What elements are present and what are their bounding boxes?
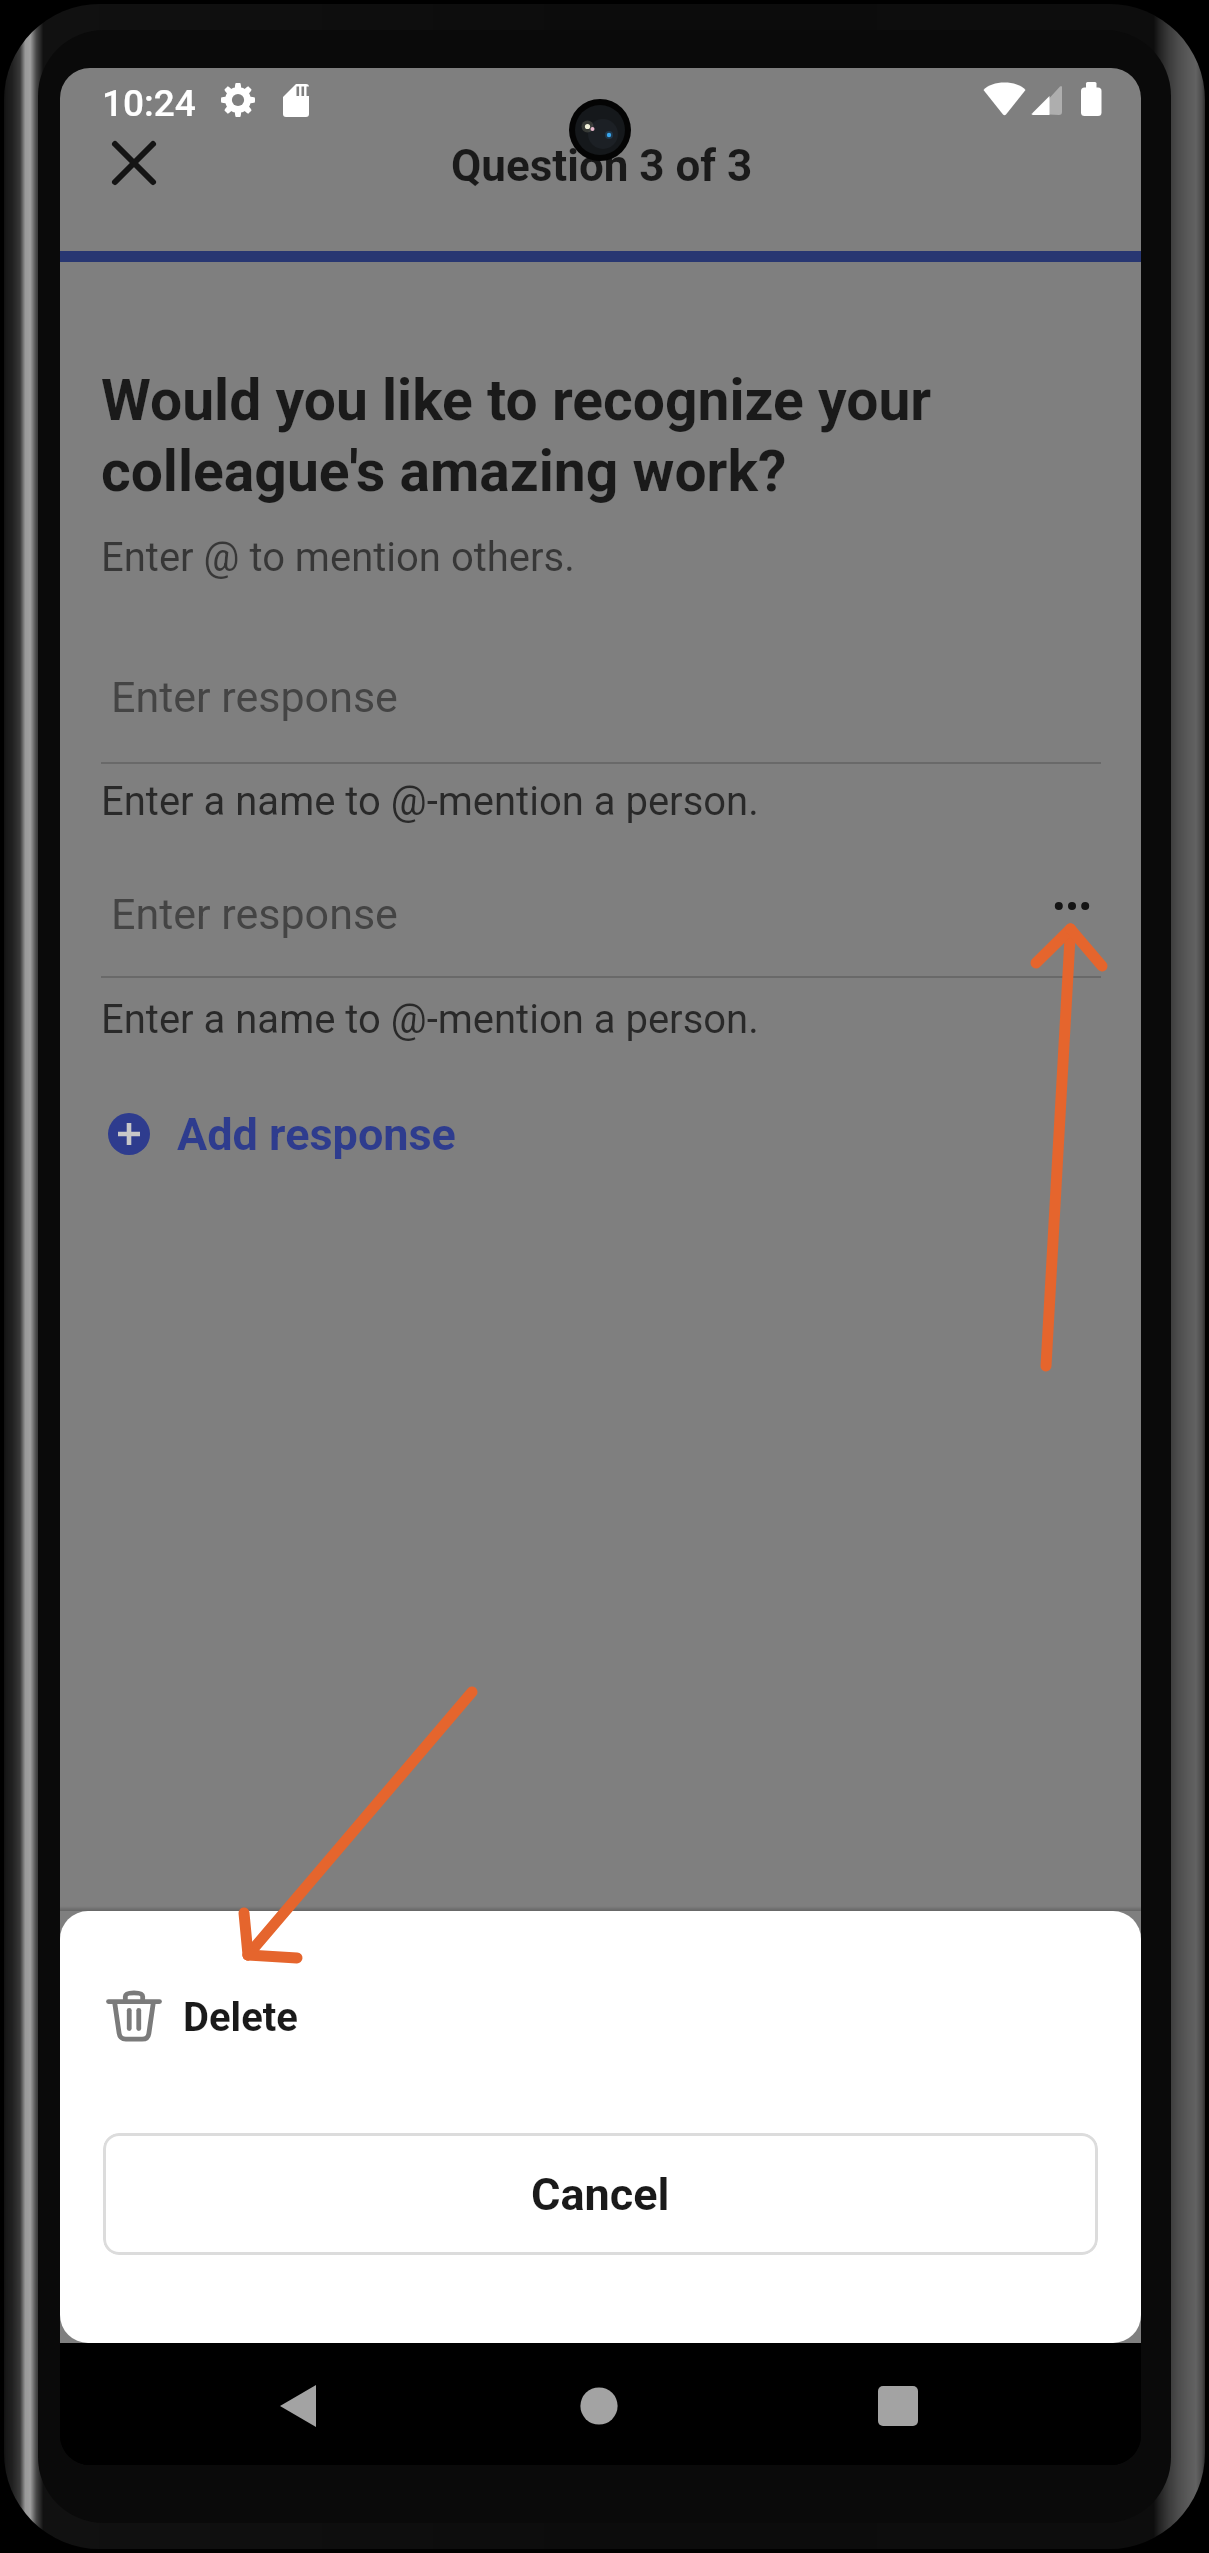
staticText: Enter @ to mention others. — [101, 534, 575, 581]
button[interactable]: Cancel — [103, 2133, 1098, 2255]
staticText: Question 3 of 3 — [451, 140, 753, 192]
button[interactable]: Recent apps — [838, 2346, 958, 2465]
button[interactable]: Add response — [108, 1094, 456, 1174]
staticText: 10:24 — [102, 82, 196, 125]
button[interactable]: Home — [539, 2346, 659, 2465]
staticText: Enter a name to @-mention a person. — [101, 778, 759, 825]
staticText: Cancel — [531, 2168, 670, 2221]
button[interactable]: Close — [84, 113, 184, 213]
button[interactable]: More options — [1031, 865, 1112, 946]
staticText: Delete — [183, 1994, 298, 2041]
staticText: Enter response — [111, 672, 398, 722]
staticText: Enter a name to @-mention a person. — [101, 996, 759, 1043]
button[interactable]: Back — [239, 2346, 359, 2465]
staticText: Would you like to recognize your colleag… — [101, 367, 932, 505]
staticText: Add response — [177, 1108, 456, 1161]
button[interactable]: Delete — [60, 1961, 1141, 2073]
staticText: Enter response — [111, 889, 398, 939]
